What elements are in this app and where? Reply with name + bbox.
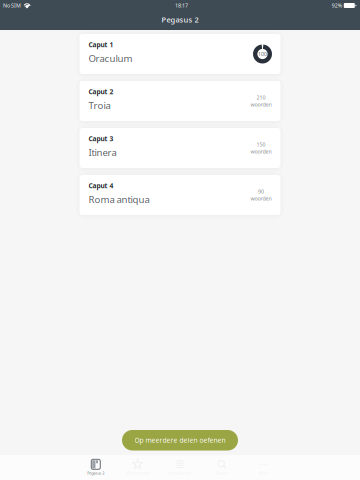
button[interactable]: Op meerdere delen oefenen — [122, 430, 238, 450]
staticText: 150 — [256, 141, 265, 148]
button[interactable]: Pegasus 2 — [75, 455, 117, 480]
button[interactable]: Caput 3 — [79, 128, 280, 168]
staticText: woorden — [250, 195, 271, 202]
staticText: 210 — [256, 94, 265, 101]
button[interactable]: Caput 2 — [79, 81, 280, 121]
staticText: Pegasus 2 — [161, 14, 198, 25]
staticText: Caput 1 — [88, 40, 113, 49]
staticText: 18:17 — [175, 2, 188, 9]
staticText: woorden — [250, 148, 271, 155]
button[interactable]: Caput 1 — [79, 34, 280, 74]
staticText: Roma antiqua — [88, 193, 149, 206]
staticText: woorden — [250, 101, 271, 108]
staticText: Op meerdere delen oefenen — [134, 436, 225, 445]
staticText: Troia — [88, 99, 110, 112]
button[interactable]: Caput 4 — [79, 175, 280, 215]
staticText: Oraculum — [88, 52, 132, 65]
staticText: 90 — [258, 188, 264, 195]
staticText: Itinera — [88, 146, 116, 159]
staticText: 100 — [258, 50, 267, 57]
staticText: Caput 2 — [88, 87, 113, 96]
staticText: Caput 4 — [88, 181, 113, 190]
staticText: No SIM — [3, 2, 21, 9]
staticText: 92% — [332, 2, 342, 9]
staticText: Caput 3 — [88, 134, 113, 143]
staticText: Pegasus 2 — [87, 470, 104, 476]
